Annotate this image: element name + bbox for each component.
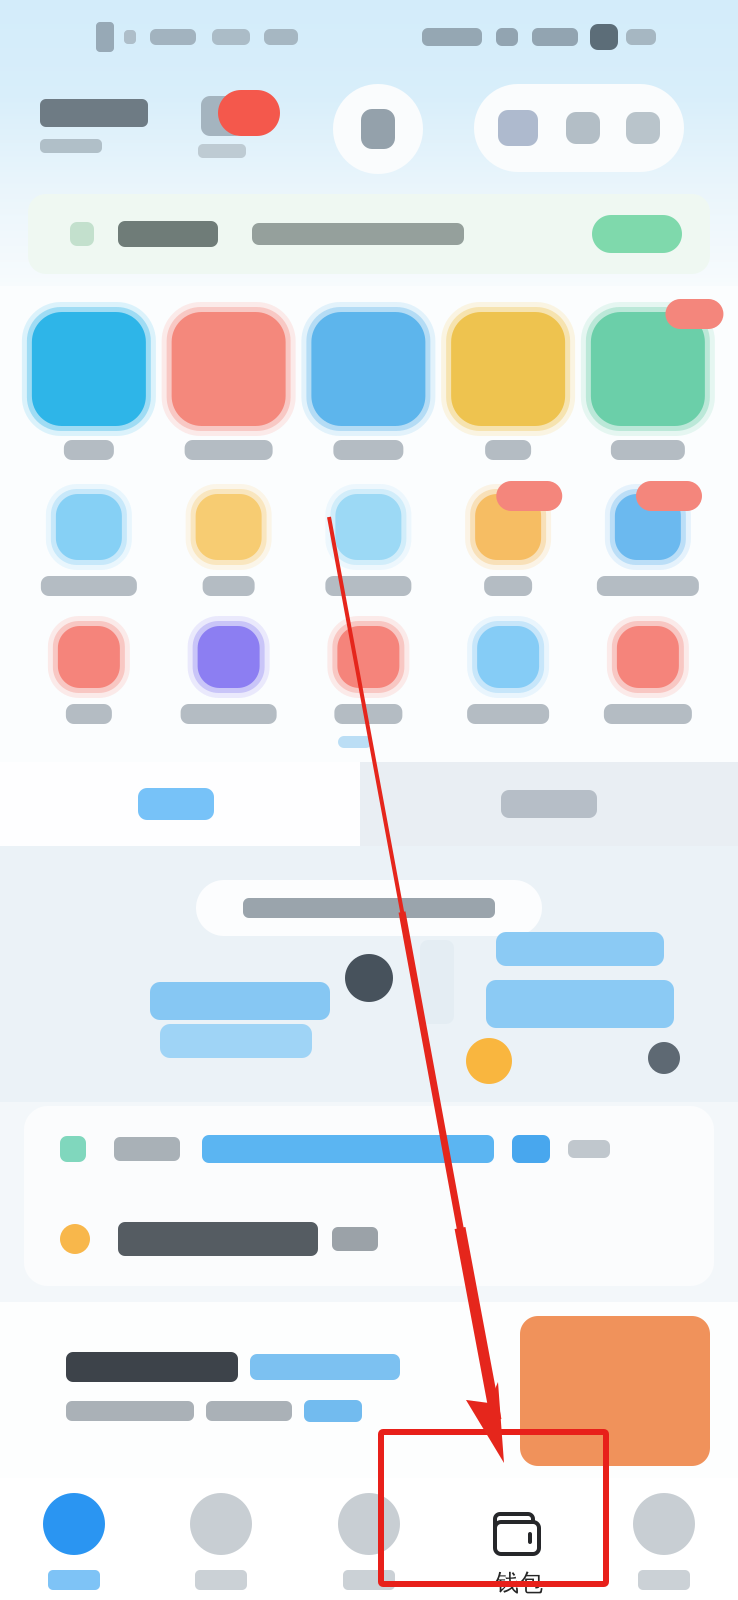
button[interactable]: 余额宝: [298, 494, 438, 596]
button[interactable]: 更多: [578, 626, 718, 724]
button[interactable]: 推荐内容: [66, 1352, 466, 1422]
button[interactable]: 医疗健康: [578, 494, 718, 596]
button[interactable]: 卡包: [438, 312, 578, 460]
button[interactable]: 生活: [360, 762, 738, 846]
button[interactable]: 借呗: [298, 626, 438, 724]
button[interactable]: 蚂蚁森林: [438, 626, 578, 724]
button[interactable]: 消息: [24, 1106, 714, 1192]
button[interactable]: 充值中心: [578, 312, 718, 460]
button[interactable]: 花呗: [19, 626, 159, 724]
button[interactable]: 理财: [147, 1478, 295, 1600]
button[interactable]: 芝麻信用: [159, 626, 299, 724]
button[interactable]: 生活缴费: [19, 494, 159, 596]
staticText: 钱包: [495, 1568, 543, 1597]
button[interactable]: 消息: [295, 1478, 443, 1600]
button[interactable]: 公告: [28, 194, 710, 274]
button[interactable]: 扫一扫: [19, 312, 159, 460]
button[interactable]: 钱包: [443, 1478, 591, 1600]
button[interactable]: 出行: [298, 312, 438, 460]
button[interactable]: 提醒: [24, 1192, 714, 1286]
button[interactable]: 首页: [0, 1478, 148, 1600]
button[interactable]: 我的: [333, 84, 423, 174]
button[interactable]: 基金: [159, 494, 299, 596]
button[interactable]: 收付款: [159, 312, 299, 460]
button[interactable]: 我的: [590, 1478, 738, 1600]
button[interactable]: 保险: [438, 494, 578, 596]
button[interactable]: 扫一扫: [186, 92, 258, 162]
button[interactable]: 推荐: [0, 762, 360, 846]
button[interactable]: 支付宝: [40, 96, 160, 156]
button[interactable]: 更多: [474, 84, 684, 172]
